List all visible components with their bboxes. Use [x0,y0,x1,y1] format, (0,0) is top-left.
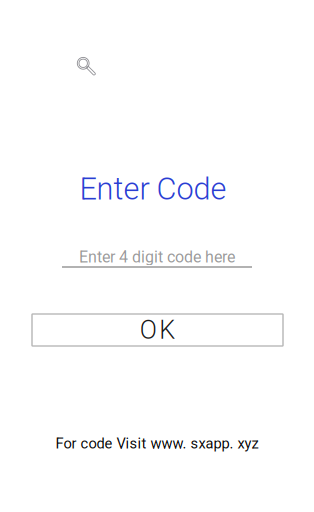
staticText: Enter Code [79,171,226,207]
staticText: Enter 4 digit code here [79,248,235,266]
staticText: For code Visit www. sxapp. xyz [55,435,258,452]
staticText: OK [140,315,175,345]
button[interactable]: Search [77,56,98,78]
button[interactable]: OK [32,314,283,346]
button[interactable]: Enter 4 digit code here [0,249,314,268]
